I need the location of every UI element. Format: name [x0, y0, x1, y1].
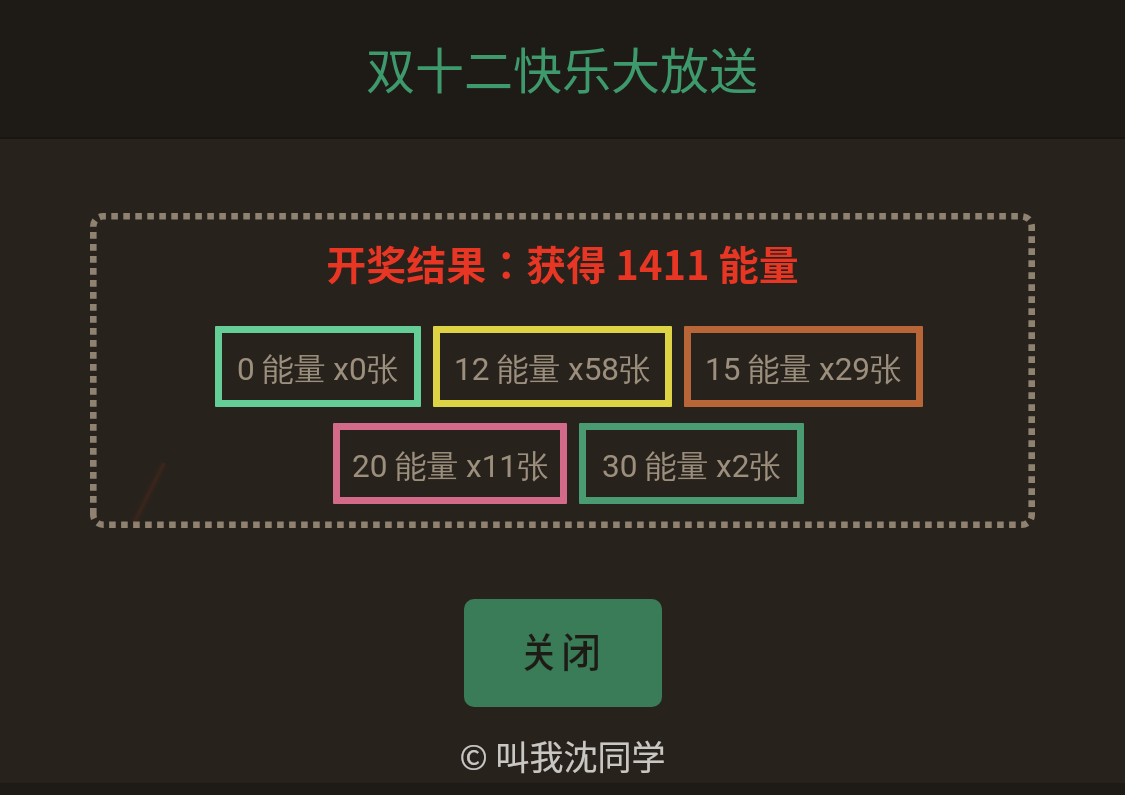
button[interactable]: 30 能量 x2张 [579, 423, 804, 504]
staticText: 30 能量 x2张 [602, 447, 781, 487]
button[interactable]: 20 能量 x11张 [333, 423, 567, 504]
staticText: 0 能量 x0张 [237, 350, 399, 390]
staticText: 20 能量 x11张 [352, 447, 549, 487]
staticText: 双十二快乐大放送 [366, 32, 759, 103]
staticText: 开奖结果：获得 1411 能量 [90, 234, 1035, 292]
staticText: © 叫我沈同学 [0, 731, 1125, 780]
staticText: 12 能量 x58张 [454, 350, 651, 390]
button[interactable]: 12 能量 x58张 [433, 326, 672, 407]
button[interactable]: 0 能量 x0张 [215, 326, 421, 407]
staticText: 关闭 [519, 621, 603, 679]
button[interactable]: 关闭 [464, 599, 662, 707]
staticText: 15 能量 x29张 [705, 350, 902, 390]
button[interactable]: 15 能量 x29张 [684, 326, 923, 407]
